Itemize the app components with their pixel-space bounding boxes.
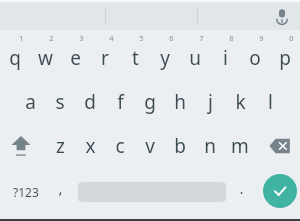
staticText: 3 — [79, 33, 84, 43]
button[interactable]: s — [45, 85, 75, 119]
staticText: b — [174, 133, 186, 159]
button[interactable]: k — [225, 85, 255, 119]
staticText: n — [204, 133, 216, 159]
button[interactable]: e — [60, 41, 90, 75]
staticText: 4 — [109, 33, 114, 43]
button[interactable]: c — [105, 129, 135, 163]
button[interactable]: z — [45, 129, 75, 163]
staticText: k — [235, 89, 246, 115]
staticText: r — [101, 45, 109, 71]
staticText: w — [38, 45, 53, 71]
button[interactable]: q — [0, 41, 30, 75]
staticText: 0 — [289, 33, 294, 43]
button[interactable]: . — [229, 172, 253, 204]
button[interactable]: x — [75, 129, 105, 163]
staticText: 8 — [229, 33, 234, 43]
button[interactable]: d — [75, 85, 105, 119]
button[interactable]: w — [30, 41, 60, 75]
button[interactable]: v — [135, 129, 165, 163]
button[interactable]: b — [165, 129, 195, 163]
staticText: x — [85, 133, 96, 159]
button[interactable]: Shift — [2, 128, 40, 164]
button[interactable]: p — [270, 41, 300, 75]
staticText: g — [144, 89, 156, 115]
staticText: p — [279, 45, 291, 71]
button[interactable]: ?123 — [3, 176, 49, 208]
staticText: t — [132, 45, 139, 71]
button[interactable]: u — [180, 41, 210, 75]
button[interactable]: l — [255, 85, 285, 119]
button[interactable]: g — [135, 85, 165, 119]
staticText: m — [231, 133, 249, 159]
staticText: v — [145, 133, 155, 159]
button[interactable]: i — [210, 41, 240, 75]
button[interactable]: a — [15, 85, 45, 119]
staticText: z — [56, 133, 65, 159]
staticText: u — [189, 45, 201, 71]
button[interactable]: m — [225, 129, 255, 163]
staticText: a — [25, 89, 36, 115]
staticText: e — [70, 45, 81, 71]
staticText: i — [223, 45, 228, 71]
staticText: 7 — [199, 33, 204, 43]
staticText: q — [9, 45, 21, 71]
staticText: l — [268, 89, 273, 115]
button[interactable]: o — [240, 41, 270, 75]
staticText: s — [55, 89, 65, 115]
staticText: f — [117, 89, 124, 115]
staticText: 2 — [49, 33, 54, 43]
staticText: d — [84, 89, 96, 115]
button[interactable]: f — [105, 85, 135, 119]
staticText: 9 — [259, 33, 264, 43]
button[interactable]: r — [90, 41, 120, 75]
button[interactable]: y — [150, 41, 180, 75]
staticText: ?123 — [13, 184, 39, 200]
staticText: 5 — [139, 33, 144, 43]
staticText: h — [174, 89, 186, 115]
staticText: 1 — [19, 33, 24, 43]
button[interactable]: n — [195, 129, 225, 163]
button[interactable]: t — [120, 41, 150, 75]
staticText: . — [239, 178, 244, 198]
button[interactable]: j — [195, 85, 225, 119]
button[interactable]: Voice input — [268, 2, 296, 30]
staticText: o — [249, 45, 261, 71]
button[interactable]: h — [165, 85, 195, 119]
staticText: , — [58, 178, 63, 198]
button[interactable]: Backspace — [262, 128, 298, 164]
staticText: c — [115, 133, 125, 159]
staticText: 6 — [169, 33, 174, 43]
staticText: y — [160, 45, 170, 71]
button[interactable]: , — [46, 172, 74, 204]
staticText: j — [208, 89, 213, 115]
button[interactable]: Enter — [263, 174, 297, 208]
